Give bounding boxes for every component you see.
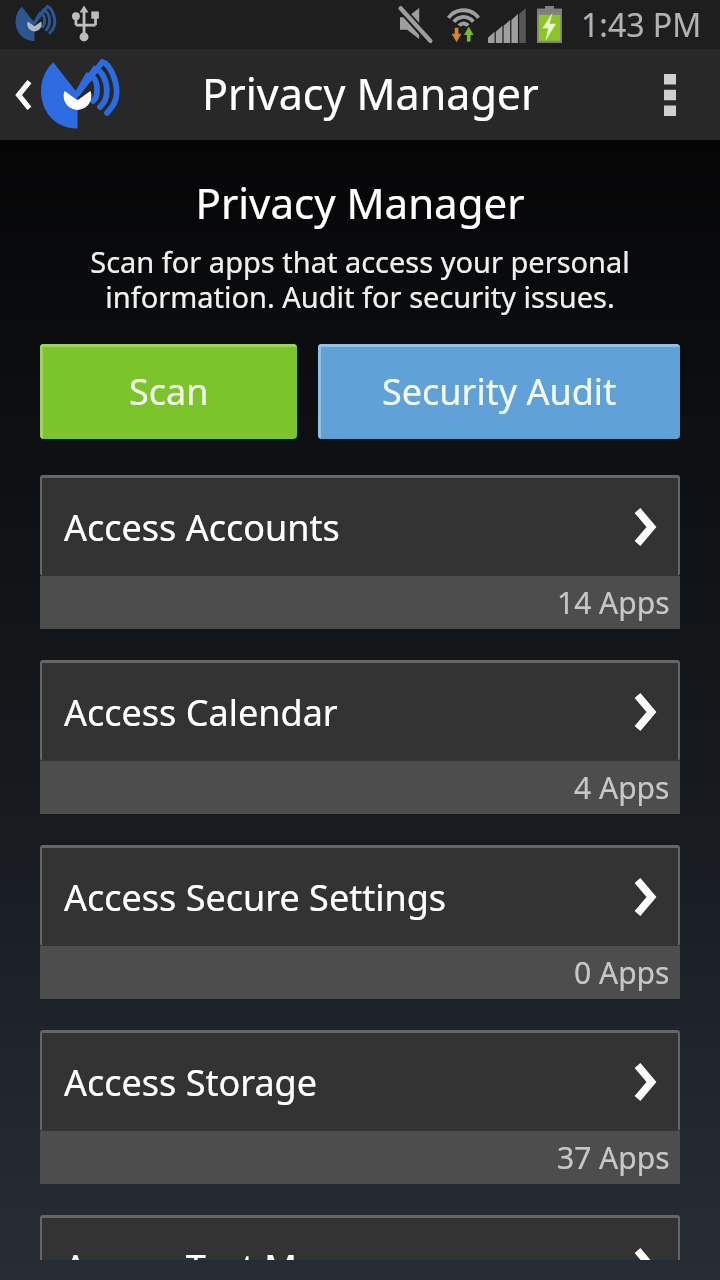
staticText: Access Storage [64,1058,318,1107]
button[interactable]: Access Storage [40,1030,680,1184]
button[interactable]: Access Calendar [40,660,680,814]
button[interactable]: Scan [40,344,297,439]
staticText: Privacy Manager [0,174,720,231]
staticText: Access Secure Settings [64,873,447,922]
staticText: Access Accounts [64,503,340,552]
button[interactable]: Access Secure Settings [40,845,680,999]
staticText: 37 Apps [557,1137,670,1178]
staticText: Access Calendar [64,688,338,737]
staticText: 4 Apps [574,767,670,808]
button[interactable]: Access Accounts [40,475,680,629]
button[interactable]: Security Audit [318,344,680,439]
button[interactable]: Navigate up [0,49,130,140]
staticText: 1:43 PM [581,3,702,47]
staticText: 14 Apps [557,582,670,623]
staticText: Scan [129,367,209,416]
button[interactable]: More options [648,49,720,140]
staticText: Privacy Manager [202,64,539,123]
staticText: 0 Apps [574,952,670,993]
button[interactable]: Access Text Messages [40,1215,680,1260]
staticText: Scan for apps that access your personal … [40,242,680,317]
staticText: Access Text Messages [64,1243,432,1260]
staticText: Security Audit [382,367,617,416]
